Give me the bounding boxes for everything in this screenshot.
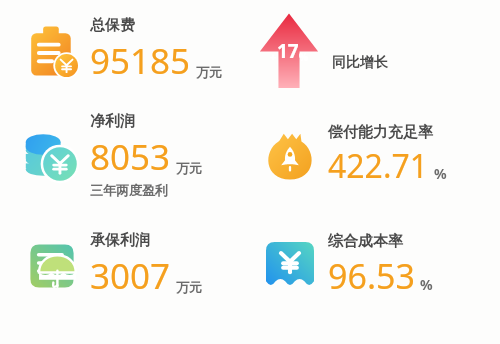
staticText: 综合成本率	[328, 232, 403, 251]
staticText: 8053	[90, 133, 171, 181]
staticText: 总保费	[90, 16, 135, 35]
button[interactable]: 承保利润	[24, 231, 202, 300]
staticText: 万元	[176, 279, 202, 295]
button[interactable]: 综合成本率	[262, 232, 433, 299]
staticText: %	[299, 50, 309, 64]
staticText: 三年两度盈利	[90, 182, 168, 198]
staticText: 净利润	[90, 112, 135, 131]
staticText: 95185	[90, 37, 191, 85]
staticText: 同比增长	[332, 54, 388, 72]
staticText: 17	[277, 38, 299, 64]
staticText: +	[270, 49, 277, 64]
staticText: %	[420, 275, 433, 294]
staticText: 万元	[196, 64, 222, 80]
button[interactable]: 净利润	[22, 112, 202, 198]
button[interactable]: 总保费	[24, 16, 222, 85]
staticText: 422.71	[328, 144, 429, 188]
button[interactable]: 偿付能力充足率	[262, 123, 447, 188]
staticText: 偿付能力充足率	[328, 123, 433, 142]
button[interactable]: 同比增长 17%	[258, 12, 320, 88]
staticText: 96.53	[328, 253, 415, 299]
staticText: %	[434, 164, 447, 183]
staticText: 承保利润	[90, 231, 150, 250]
staticText: 万元	[176, 160, 202, 176]
staticText: 3007	[90, 252, 171, 300]
